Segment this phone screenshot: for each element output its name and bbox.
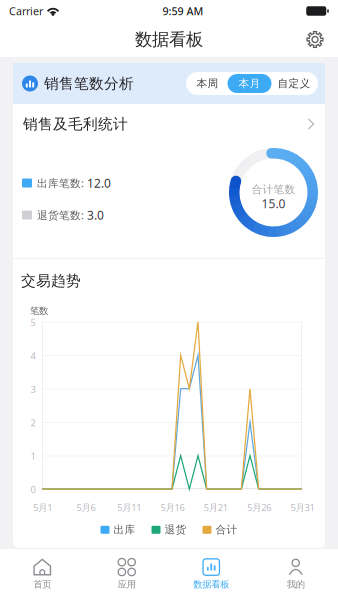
staticText: 销售笔数分析 <box>44 74 134 92</box>
staticText: 5月16 <box>160 501 184 513</box>
staticText: 5月31 <box>290 501 314 513</box>
staticText: 5月1 <box>33 501 52 513</box>
staticText: 5月26 <box>247 501 271 513</box>
staticText: 销售及毛利统计 <box>23 115 128 133</box>
button[interactable]: 本周 <box>187 74 227 93</box>
button[interactable]: 数据看板 <box>169 549 253 600</box>
staticText: 数据看板 <box>193 579 229 590</box>
button[interactable]: 首页 <box>0 549 84 600</box>
staticText: 出库笔数: <box>37 176 84 190</box>
staticText: 合计笔数 <box>251 183 295 196</box>
staticText: 出库 <box>113 523 135 536</box>
staticText: 交易趋势 <box>21 272 81 290</box>
staticText: 3 <box>30 383 35 395</box>
staticText: 退货 <box>164 523 186 536</box>
staticText: 9:59 AM <box>162 4 203 18</box>
staticText: 0 <box>30 483 35 496</box>
staticText: 4 <box>30 349 35 362</box>
staticText: 首页 <box>33 579 51 590</box>
staticText: 2 <box>30 416 35 429</box>
staticText: 数据看板 <box>135 29 203 50</box>
staticText: 应用 <box>118 579 136 590</box>
button[interactable]: 本月 <box>227 74 271 93</box>
staticText: Carrier <box>9 4 43 18</box>
staticText: 5月6 <box>76 501 95 513</box>
staticText: 3.0 <box>87 207 104 223</box>
button[interactable]: 设置 <box>297 22 333 56</box>
staticText: 我的 <box>287 579 305 590</box>
staticText: 5月11 <box>117 501 141 513</box>
staticText: 退货笔数: <box>37 208 84 222</box>
staticText: 合计 <box>215 523 237 536</box>
staticText: 1 <box>30 450 35 462</box>
staticText: 自定义 <box>277 77 310 90</box>
staticText: 本周 <box>196 77 218 90</box>
button[interactable]: 应用 <box>84 549 169 600</box>
button[interactable]: 自定义 <box>271 74 316 93</box>
staticText: 12.0 <box>87 175 111 191</box>
staticText: 本月 <box>238 77 260 90</box>
staticText: 5月21 <box>204 501 228 513</box>
button[interactable]: 销售及毛利统计 <box>13 104 325 144</box>
staticText: 15.0 <box>261 195 285 211</box>
staticText: 5 <box>30 316 35 328</box>
staticText: 笔数 <box>30 305 48 317</box>
button[interactable]: 我的 <box>253 549 338 600</box>
